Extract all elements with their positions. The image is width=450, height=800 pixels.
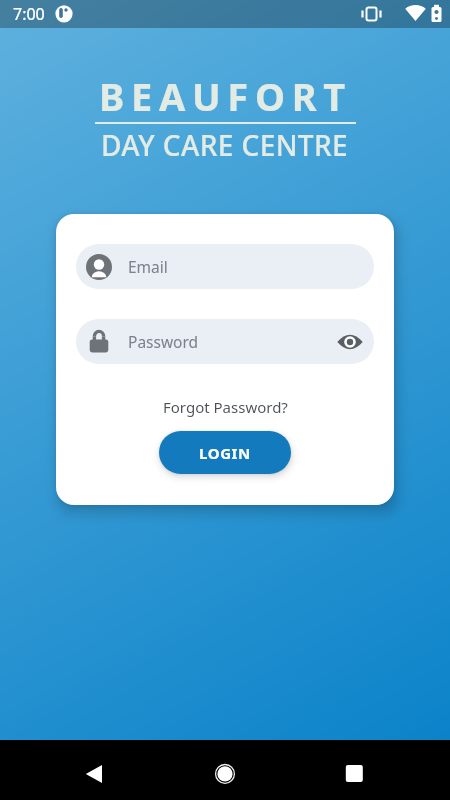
button[interactable]: Email xyxy=(76,244,374,289)
staticText: Email xyxy=(128,256,168,277)
staticText: Password xyxy=(128,331,199,352)
button[interactable]: Password xyxy=(76,319,374,364)
staticText: LOGIN xyxy=(199,443,251,463)
button[interactable]: Forgot Password? xyxy=(163,397,288,417)
button[interactable] xyxy=(330,322,370,362)
button[interactable]: LOGIN xyxy=(159,431,291,474)
button[interactable] xyxy=(300,740,450,800)
button[interactable] xyxy=(150,740,300,800)
staticText: DAY CARE CENTRE xyxy=(101,126,349,164)
button[interactable] xyxy=(0,740,150,800)
staticText: 7:00 xyxy=(13,3,45,25)
staticText: BEAUFORT xyxy=(99,70,352,122)
